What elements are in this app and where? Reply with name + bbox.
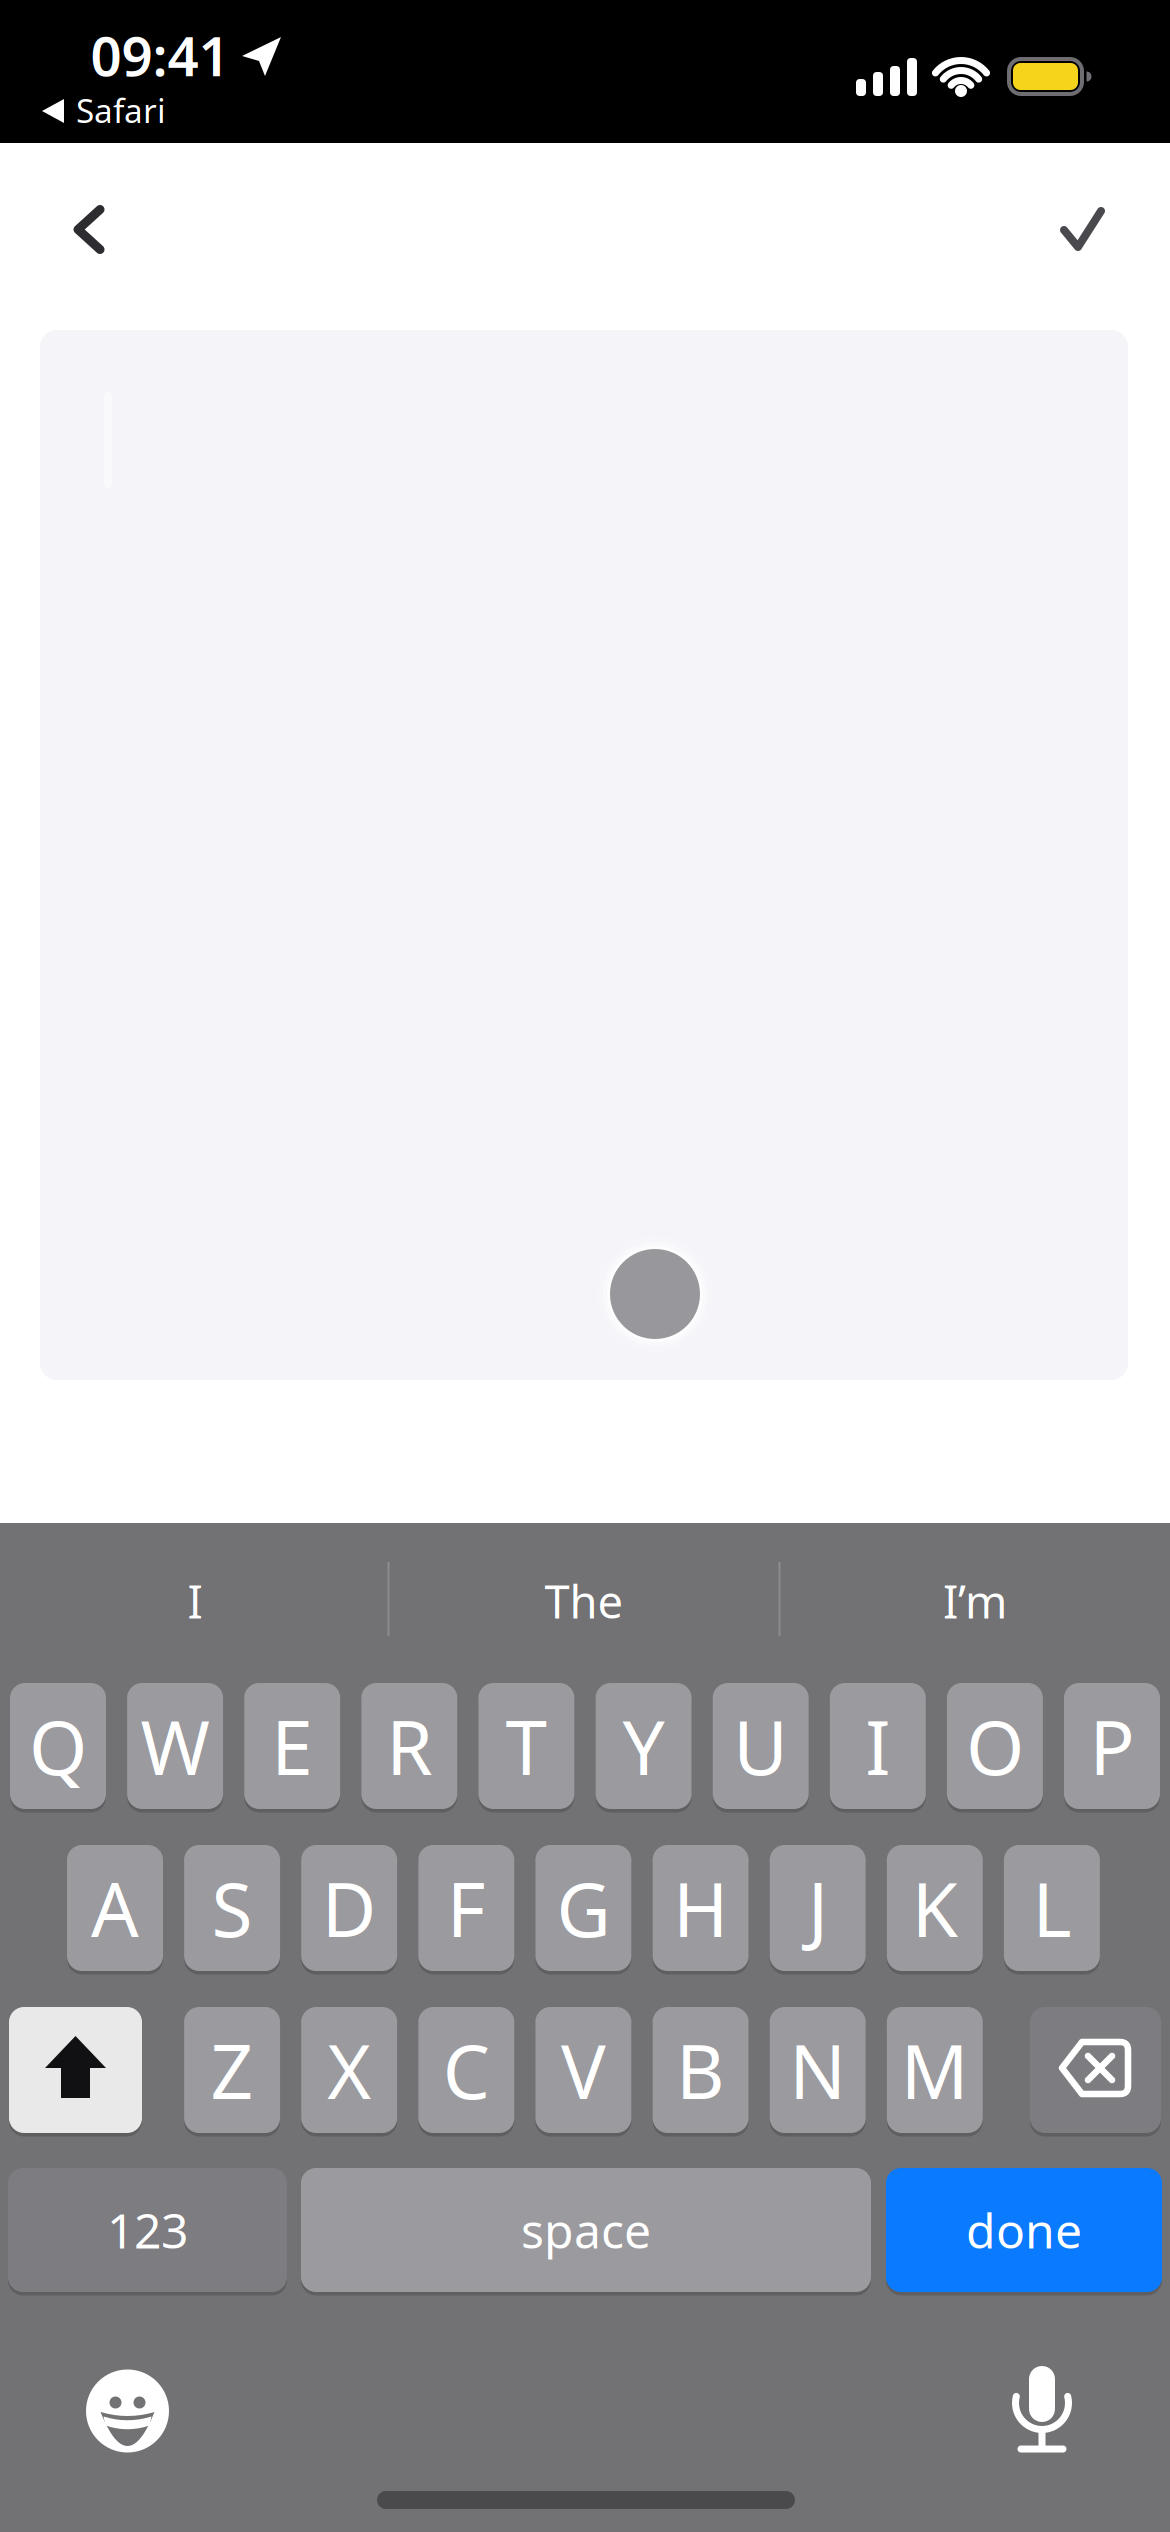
staticText: E <box>271 1696 313 1796</box>
button[interactable]: C <box>418 2005 514 2135</box>
staticText: L <box>1032 1858 1071 1958</box>
staticText: V <box>561 2020 606 2120</box>
button[interactable] <box>1030 2005 1161 2135</box>
staticText: F <box>447 1858 486 1958</box>
staticText: X <box>327 2020 371 2120</box>
button[interactable]: Z <box>184 2005 280 2135</box>
staticText: U <box>733 1696 788 1796</box>
button[interactable]: T <box>478 1681 574 1811</box>
staticText: Y <box>623 1696 665 1796</box>
staticText: M <box>901 2020 969 2120</box>
staticText: Safari <box>76 88 166 132</box>
button[interactable]: P <box>1064 1681 1160 1811</box>
button[interactable]: S <box>184 1843 280 1973</box>
button[interactable]: The <box>394 1536 774 1666</box>
button[interactable]: X <box>301 2005 397 2135</box>
staticText: P <box>1089 1696 1134 1796</box>
staticText: R <box>386 1696 432 1796</box>
button[interactable]: N <box>770 2005 866 2135</box>
button[interactable]: G <box>535 1843 631 1973</box>
button[interactable]: done <box>886 2166 1162 2294</box>
button[interactable]: H <box>653 1843 749 1973</box>
staticText: O <box>966 1696 1024 1796</box>
staticText: S <box>212 1858 253 1958</box>
staticText: Z <box>211 2020 254 2120</box>
button[interactable] <box>67 2351 187 2471</box>
staticText: C <box>443 2020 490 2120</box>
staticText: B <box>676 2020 725 2120</box>
button[interactable]: M <box>887 2005 983 2135</box>
button[interactable]: Y <box>596 1681 692 1811</box>
button[interactable] <box>9 2005 142 2135</box>
button[interactable]: D <box>301 1843 397 1973</box>
staticText: I’m <box>943 1571 1007 1631</box>
staticText: 123 <box>107 2198 188 2262</box>
staticText: J <box>808 1858 828 1958</box>
staticText: W <box>141 1696 210 1796</box>
button[interactable]: I <box>5 1536 385 1666</box>
button[interactable]: W <box>127 1681 223 1811</box>
button[interactable] <box>1037 184 1127 274</box>
staticText: I <box>187 1571 202 1631</box>
staticText: D <box>322 1858 377 1958</box>
staticText: done <box>966 2198 1082 2262</box>
button[interactable]: I’m <box>785 1536 1165 1666</box>
button[interactable]: A <box>67 1843 163 1973</box>
button[interactable]: space <box>301 2166 871 2294</box>
staticText: The <box>544 1571 623 1631</box>
button[interactable]: Q <box>10 1681 106 1811</box>
button[interactable]: I <box>830 1681 926 1811</box>
button[interactable]: K <box>887 1843 983 1973</box>
staticText: Q <box>29 1696 87 1796</box>
staticText: I <box>865 1696 890 1796</box>
button[interactable]: U <box>713 1681 809 1811</box>
button[interactable] <box>43 184 133 274</box>
button[interactable]: V <box>535 2005 631 2135</box>
staticText: space <box>521 2198 651 2262</box>
button[interactable]: E <box>244 1681 340 1811</box>
staticText: G <box>556 1858 610 1958</box>
button[interactable]: B <box>653 2005 749 2135</box>
button[interactable]: L <box>1004 1843 1100 1973</box>
button[interactable]: F <box>418 1843 514 1973</box>
button[interactable]: R <box>361 1681 457 1811</box>
staticText: 09:41 <box>90 19 229 91</box>
button[interactable]: 123 <box>8 2166 287 2294</box>
staticText: K <box>912 1858 958 1958</box>
staticText: A <box>91 1858 139 1958</box>
button[interactable] <box>982 2348 1102 2468</box>
button[interactable]: O <box>947 1681 1043 1811</box>
staticText: N <box>789 2020 846 2120</box>
button[interactable]: J <box>770 1843 866 1973</box>
staticText: H <box>673 1858 728 1958</box>
staticText: T <box>505 1696 547 1796</box>
